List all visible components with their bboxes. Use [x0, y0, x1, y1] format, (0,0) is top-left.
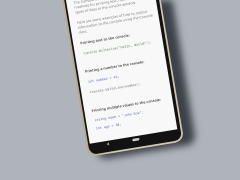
button[interactable]: Phone showing C# Console documentation: [0, 0, 240, 180]
